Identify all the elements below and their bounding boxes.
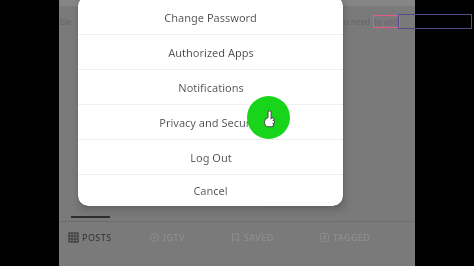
staticText: SAVED xyxy=(244,231,274,243)
button[interactable]: Cancel xyxy=(78,175,343,206)
button[interactable]: SAVED xyxy=(229,229,276,245)
button[interactable]: Change Password xyxy=(78,0,343,34)
staticText: you need xyxy=(335,16,370,27)
staticText: Cancel xyxy=(193,183,228,198)
button[interactable]: Authorized Apps xyxy=(78,35,343,69)
staticText: ble xyxy=(60,16,72,27)
staticText: to and xyxy=(374,16,399,27)
button[interactable]: Notifications xyxy=(78,70,343,104)
button[interactable]: POSTS xyxy=(67,229,114,245)
staticText: Change Password xyxy=(164,10,257,25)
staticText: Authorized Apps xyxy=(168,45,254,60)
staticText: Privacy and Security xyxy=(159,115,263,130)
staticText: IGTV xyxy=(163,231,185,243)
other: Tap cursor xyxy=(247,96,290,139)
button[interactable]: Log Out xyxy=(78,140,343,174)
staticText: POSTS xyxy=(82,231,112,243)
button[interactable]: IGTV xyxy=(148,229,187,245)
staticText: Log Out xyxy=(190,150,232,165)
staticText: Notifications xyxy=(178,80,244,95)
staticText: TAGGED xyxy=(333,231,371,243)
button[interactable]: TAGGED xyxy=(318,229,373,245)
button[interactable]: Privacy and Security xyxy=(78,105,343,139)
